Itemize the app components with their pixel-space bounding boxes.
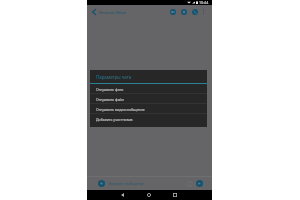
staticText: Отправить файл [96, 97, 124, 102]
staticText: Отправить видеосообщение [96, 107, 145, 112]
button[interactable]: Phone [190, 5, 200, 18]
button[interactable]: Отправить фото [90, 84, 207, 94]
button[interactable]: More options [199, 5, 207, 18]
staticText: Добавить участников [96, 117, 133, 122]
button[interactable]: Send [195, 179, 204, 188]
staticText: Отправить фото [96, 87, 124, 92]
button[interactable]: Recents [169, 190, 181, 200]
button[interactable]: Back [116, 190, 128, 200]
button[interactable]: Home [143, 190, 155, 200]
button[interactable]: Отправить видеосообщение [90, 104, 207, 114]
button[interactable]: Back [88, 5, 99, 18]
button[interactable]: Attach [97, 179, 106, 188]
staticText: Введите сообщение [109, 181, 145, 186]
button[interactable]: Добавить участников [90, 114, 207, 124]
staticText: 10:44 [199, 0, 209, 5]
button[interactable]: Отправить файл [90, 94, 207, 104]
button[interactable]: Video call [168, 5, 178, 18]
button[interactable]: Audio call [179, 5, 189, 18]
staticText: Иванов Иван [99, 9, 127, 15]
staticText: Параметры чата [96, 74, 132, 80]
